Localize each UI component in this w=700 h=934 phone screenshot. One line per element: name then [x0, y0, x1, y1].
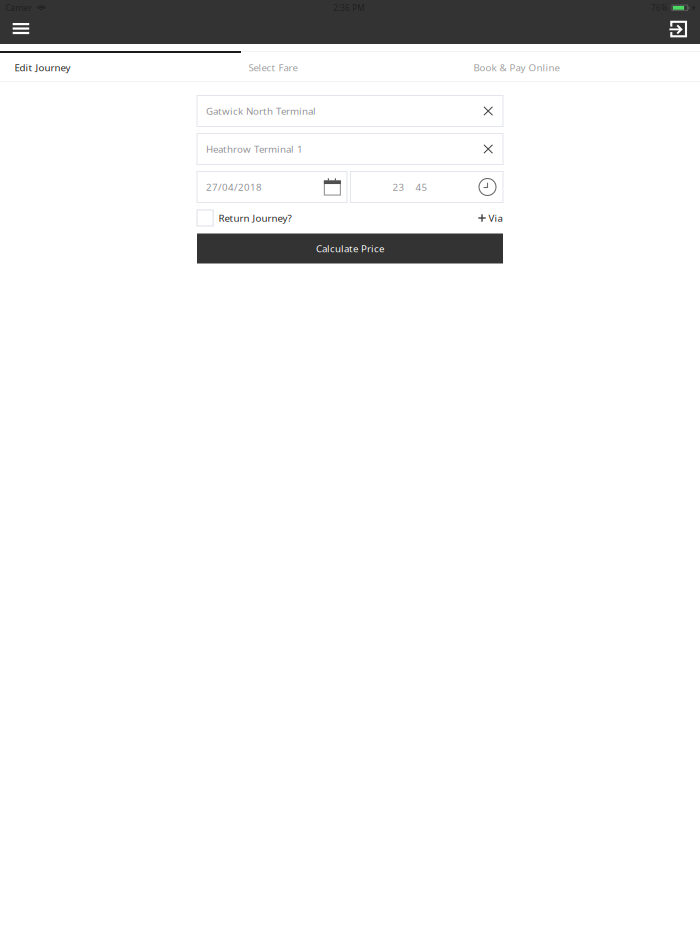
staticText: Via	[488, 211, 502, 225]
button[interactable]: Clear	[478, 100, 498, 121]
button[interactable]: Choose time	[479, 178, 503, 195]
staticText: Carrier	[5, 2, 31, 13]
staticText: 27/04/2018	[206, 180, 262, 194]
staticText: Book & Pay Online	[473, 61, 559, 74]
staticText: 76%	[651, 2, 668, 13]
button[interactable]: Sign in	[656, 20, 700, 44]
staticText: 45	[415, 180, 427, 194]
staticText: Calculate Price	[316, 242, 384, 255]
button[interactable]: Calculate Price	[197, 233, 503, 263]
button[interactable]: Clear	[478, 138, 498, 159]
button[interactable]: Menu	[0, 20, 43, 44]
button[interactable]: Select Fare	[241, 51, 466, 82]
staticText: 23	[392, 180, 404, 194]
staticText: Select Fare	[248, 61, 297, 74]
staticText: 2:36 PM	[333, 2, 364, 13]
staticText: Gatwick North Terminal	[206, 104, 316, 118]
button[interactable]: Choose date	[324, 178, 347, 196]
button[interactable]: Return Journey?	[197, 210, 291, 226]
staticText: Edit Journey	[14, 61, 70, 74]
staticText: Return Journey?	[218, 211, 291, 225]
button[interactable]: Book & Pay Online	[466, 51, 700, 82]
button[interactable]: Via	[478, 211, 503, 225]
button[interactable]: Edit Journey	[0, 51, 241, 82]
staticText: Heathrow Terminal 1	[206, 142, 303, 156]
